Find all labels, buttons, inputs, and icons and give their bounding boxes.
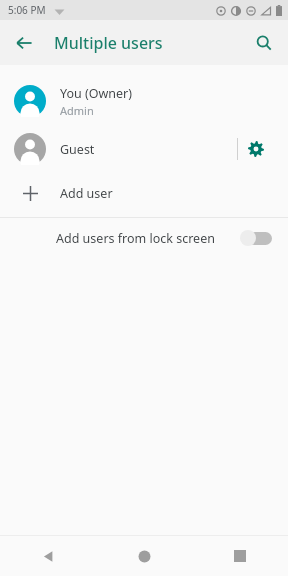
staticText: Multiple users (54, 32, 163, 54)
button[interactable]: Add users from lock screen toggle (240, 227, 274, 249)
staticText: You (Owner) (60, 85, 133, 102)
button[interactable]: Recent apps (192, 536, 288, 576)
staticText: Add user (60, 185, 113, 202)
button[interactable]: Search (246, 25, 282, 61)
button[interactable]: Add users from lock screen (0, 218, 288, 258)
button[interactable]: Add user (0, 173, 288, 213)
staticText: Guest (60, 141, 95, 158)
button[interactable]: Guest settings (238, 131, 274, 167)
button[interactable]: Back (0, 536, 96, 576)
button[interactable]: Back (6, 25, 42, 61)
button[interactable]: Home (96, 536, 192, 576)
staticText: 5:06 PM (8, 3, 46, 17)
button[interactable]: You (Owner) (0, 77, 288, 125)
button[interactable]: Guest (0, 125, 288, 173)
staticText: Add users from lock screen (56, 230, 240, 247)
staticText: Admin (60, 103, 94, 118)
